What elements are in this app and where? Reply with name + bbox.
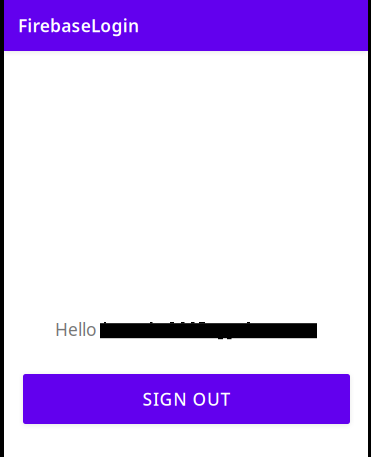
staticText: Hello bbox=[55, 317, 96, 341]
button[interactable]: SIGN OUT bbox=[23, 374, 350, 424]
staticText: FirebaseLogin bbox=[18, 14, 139, 37]
staticText: SIGN OUT bbox=[142, 387, 231, 411]
